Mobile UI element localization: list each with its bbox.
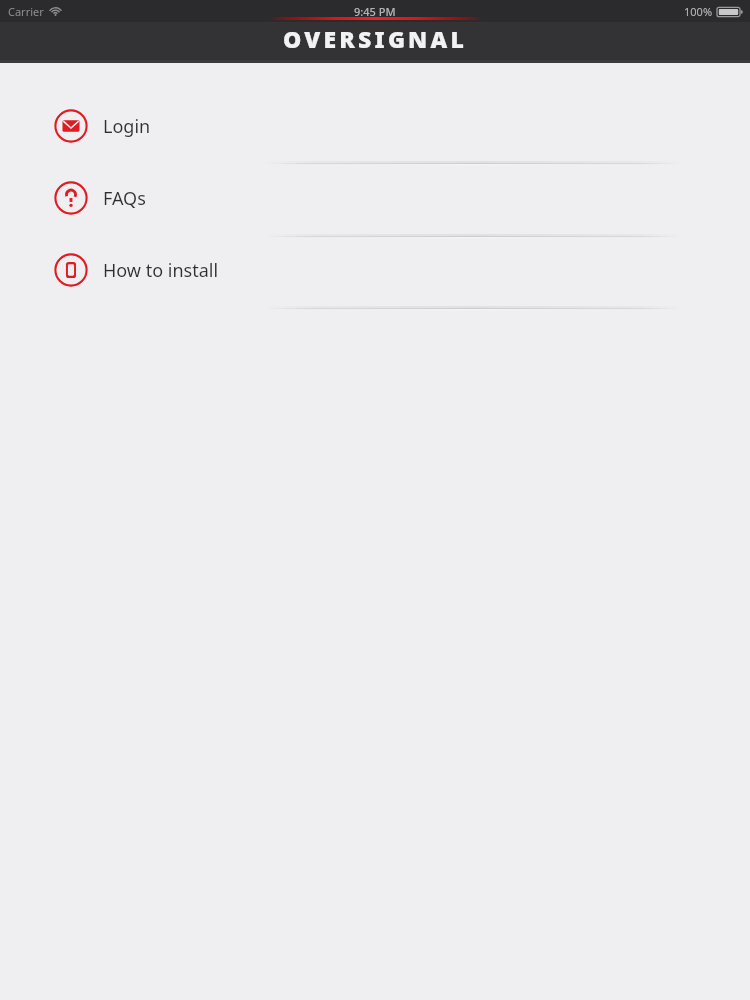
staticText: OVERSIGNAL bbox=[283, 23, 467, 54]
other: FAQs bbox=[54, 181, 88, 215]
staticText: 100% bbox=[684, 4, 713, 19]
staticText: Carrier bbox=[8, 4, 44, 19]
staticText: FAQs bbox=[103, 186, 146, 211]
button[interactable]: FAQs bbox=[0, 181, 750, 215]
button[interactable]: Login bbox=[0, 109, 750, 143]
staticText: Login bbox=[103, 114, 151, 139]
other: Login bbox=[54, 109, 88, 143]
staticText: 9:45 PM bbox=[354, 4, 396, 19]
button[interactable]: How to install bbox=[0, 253, 750, 287]
other: How to install bbox=[54, 253, 88, 287]
staticText: How to install bbox=[103, 258, 219, 283]
